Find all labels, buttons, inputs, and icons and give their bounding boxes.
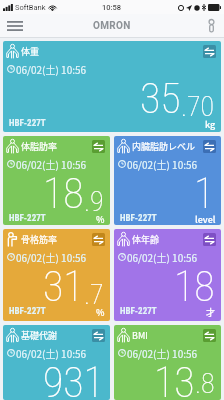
staticText: .8 <box>195 367 215 400</box>
staticText: 18 <box>174 262 215 311</box>
staticText: 06/02(土) 10:56 <box>16 157 87 171</box>
button[interactable]: 35 <box>3 41 221 132</box>
staticText: 18 <box>43 169 84 218</box>
staticText: 06/02(土) 10:56 <box>127 157 198 171</box>
staticText: HBF-227T <box>9 306 46 317</box>
button[interactable]: Transfer data <box>92 233 105 246</box>
staticText: % <box>96 213 105 225</box>
button[interactable]: Transfer data <box>203 233 216 246</box>
staticText: 1 <box>194 169 215 218</box>
staticText: level <box>195 213 216 225</box>
staticText: HBF-227T <box>9 118 46 129</box>
button[interactable]: 1 <box>114 136 221 225</box>
staticText: OMRON <box>93 20 131 32</box>
button[interactable]: Transfer data <box>203 140 216 153</box>
button[interactable]: Profile <box>198 14 224 38</box>
staticText: 13 <box>154 358 195 400</box>
button[interactable]: 13 <box>114 325 221 400</box>
staticText: 931 <box>43 358 104 400</box>
staticText: HBF-227T <box>120 213 157 224</box>
staticText: HBF-227T <box>120 306 157 317</box>
staticText: .7 <box>84 278 104 311</box>
button[interactable]: Transfer data <box>203 45 216 58</box>
staticText: 06/02(土) 10:56 <box>16 62 87 76</box>
staticText: 体重 <box>21 45 40 58</box>
button[interactable]: Menu <box>0 14 30 38</box>
staticText: 06/02(土) 10:56 <box>16 250 87 264</box>
button[interactable]: 31 <box>3 229 110 321</box>
staticText: 06/02(土) 10:56 <box>127 346 198 360</box>
staticText: 10:58 <box>102 3 122 12</box>
button[interactable]: Transfer data <box>92 329 105 342</box>
button[interactable]: Transfer data <box>203 329 216 342</box>
staticText: .9 <box>84 185 104 218</box>
staticText: 06/02(土) 10:56 <box>127 250 198 264</box>
staticText: 体脂肪率 <box>21 140 58 153</box>
staticText: 06/02(土) 10:56 <box>16 346 87 360</box>
staticText: 基礎代謝 <box>21 329 58 342</box>
staticText: .70 <box>181 90 215 123</box>
staticText: 内臓脂肪レベル <box>132 140 196 153</box>
staticText: 31 <box>43 262 84 311</box>
staticText: SoftBank <box>15 3 46 12</box>
button[interactable]: 931 <box>3 325 110 400</box>
staticText: HBF-227T <box>9 213 46 224</box>
button[interactable]: 18 <box>114 229 221 321</box>
staticText: 才 <box>206 306 216 319</box>
staticText: kg <box>205 118 216 131</box>
staticText: 骨格筋率 <box>21 233 58 246</box>
staticText: 35 <box>140 74 181 123</box>
staticText: BMI <box>132 329 148 342</box>
button[interactable]: 18 <box>3 136 110 225</box>
button[interactable]: Transfer data <box>92 140 105 153</box>
staticText: % <box>96 306 105 319</box>
staticText: 体年齢 <box>132 233 160 246</box>
